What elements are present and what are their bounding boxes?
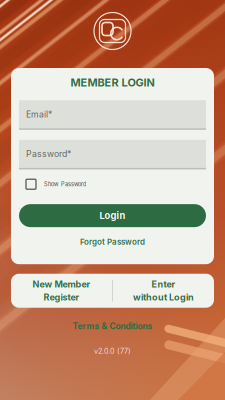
- staticText: Password*: [26, 149, 71, 159]
- button[interactable]: Terms & Conditions: [64, 319, 160, 333]
- staticText: Terms & Conditions: [72, 321, 152, 331]
- staticText: Email*: [26, 109, 52, 119]
- staticText: Enter: [151, 279, 175, 290]
- staticText: Forgot Password: [80, 237, 145, 247]
- staticText: without Login: [133, 292, 194, 303]
- staticText: Login: [99, 210, 125, 221]
- button[interactable]: Login: [19, 204, 206, 227]
- button[interactable]: New Member: [11, 274, 112, 308]
- staticText: Show Password: [44, 181, 86, 188]
- staticText: New Member: [32, 279, 90, 290]
- button[interactable]: Forgot Password: [72, 235, 153, 249]
- staticText: Register: [43, 292, 79, 303]
- staticText: MEMBER LOGIN: [70, 76, 154, 89]
- staticText: v2.0.0 (77): [94, 347, 131, 355]
- button[interactable]: Enter: [113, 274, 214, 308]
